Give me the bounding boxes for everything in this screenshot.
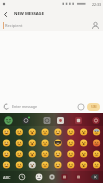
button[interactable]: [64, 160, 77, 171]
button[interactable]: [38, 126, 51, 138]
button[interactable]: [90, 126, 103, 138]
button[interactable]: [86, 171, 103, 183]
button[interactable]: [77, 126, 90, 138]
button[interactable]: [64, 138, 77, 149]
button[interactable]: [64, 149, 77, 160]
button[interactable]: [35, 113, 52, 126]
button[interactable]: [0, 138, 12, 149]
button[interactable]: [25, 160, 38, 171]
button[interactable]: [52, 113, 69, 126]
staticText: Recipient: [5, 23, 23, 28]
staticText: ABC: [3, 175, 11, 180]
button[interactable]: [12, 149, 25, 160]
button[interactable]: [86, 113, 103, 126]
button[interactable]: [69, 113, 86, 126]
staticText: 22:33: [92, 2, 101, 7]
button[interactable]: [77, 160, 90, 171]
button[interactable]: [18, 113, 35, 126]
button[interactable]: [38, 149, 51, 160]
button[interactable]: [12, 138, 25, 149]
button[interactable]: [25, 149, 38, 160]
staticText: SIM: [91, 105, 97, 109]
button[interactable]: [38, 160, 51, 171]
button[interactable]: [0, 149, 12, 160]
button[interactable]: [0, 126, 12, 138]
button[interactable]: [18, 171, 35, 183]
button[interactable]: [69, 171, 86, 183]
button[interactable]: Recipient: [0, 19, 103, 31]
button[interactable]: [0, 113, 18, 126]
button[interactable]: [38, 138, 51, 149]
button[interactable]: [90, 160, 103, 171]
button[interactable]: [25, 138, 38, 149]
button[interactable]: [0, 171, 18, 183]
staticText: NEW MESSAGE: [14, 11, 44, 17]
button[interactable]: [51, 138, 64, 149]
button[interactable]: [52, 171, 69, 183]
button[interactable]: [51, 160, 64, 171]
button[interactable]: Enter message: [0, 100, 103, 113]
button[interactable]: [51, 126, 64, 138]
button[interactable]: [35, 171, 52, 183]
button[interactable]: [77, 138, 90, 149]
button[interactable]: [12, 160, 25, 171]
button[interactable]: [12, 126, 25, 138]
button[interactable]: [64, 126, 77, 138]
button[interactable]: [90, 149, 103, 160]
button[interactable]: NEW MESSAGE: [0, 8, 103, 19]
button[interactable]: [51, 149, 64, 160]
button[interactable]: [77, 149, 90, 160]
button[interactable]: [90, 138, 103, 149]
button[interactable]: [0, 160, 12, 171]
button[interactable]: SIM: [87, 103, 100, 111]
button[interactable]: [25, 126, 38, 138]
staticText: Enter message: [12, 104, 38, 109]
